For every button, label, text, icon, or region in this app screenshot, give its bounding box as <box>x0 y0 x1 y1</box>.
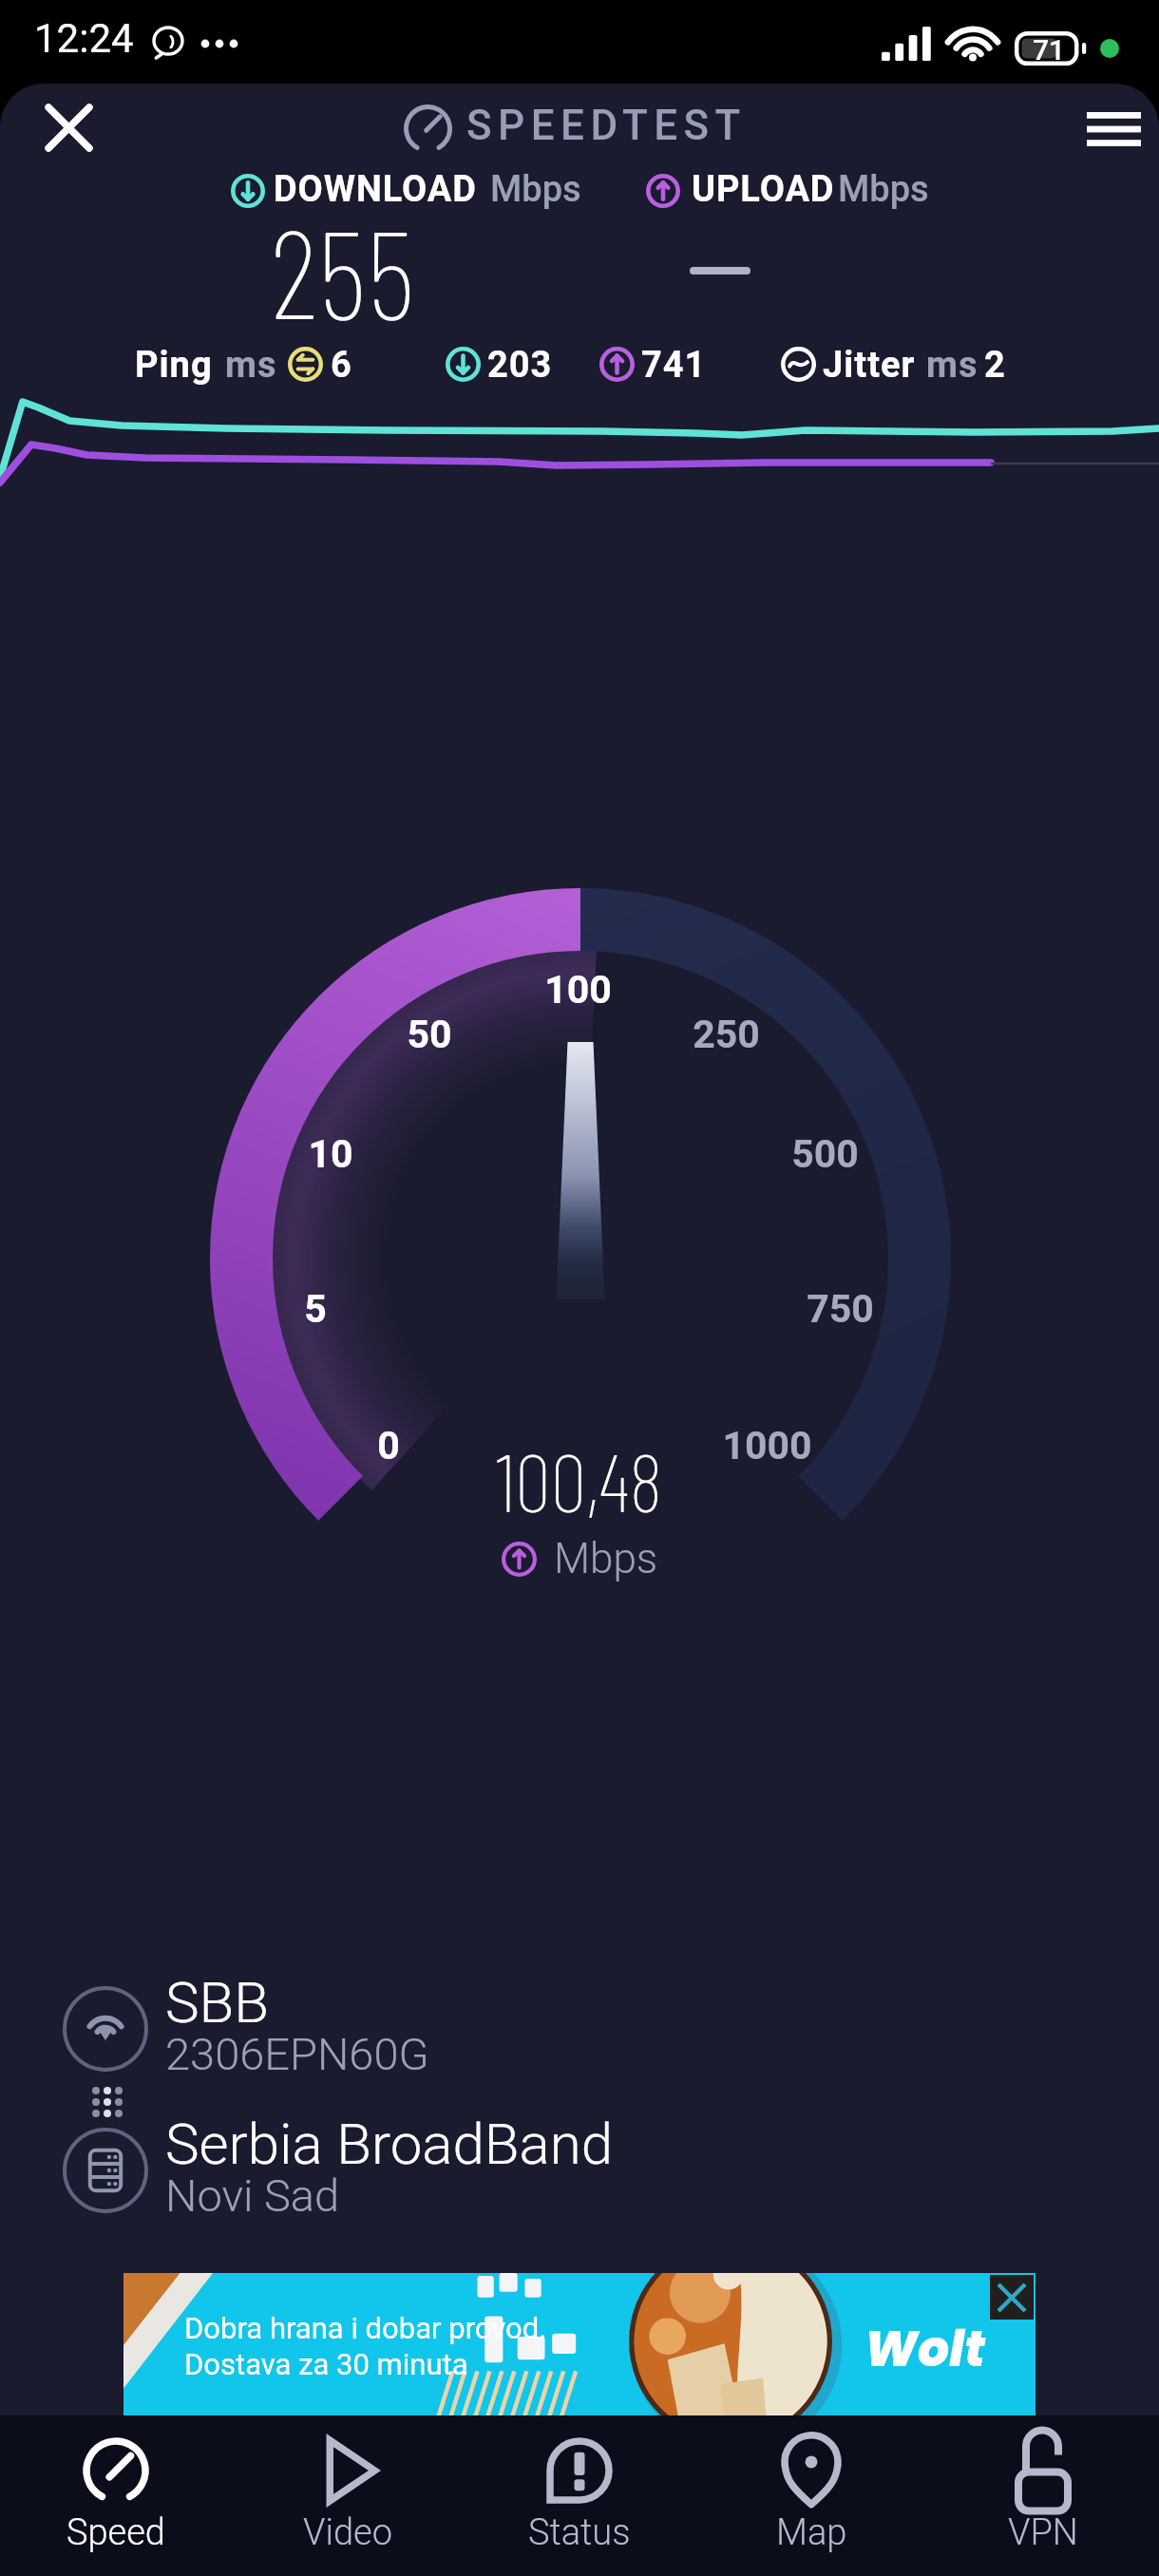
staticText: Ping <box>135 344 213 387</box>
staticText: 203 <box>487 344 553 387</box>
staticText: Dostava za 30 minuta <box>184 2347 468 2381</box>
staticText: Video <box>303 2511 393 2554</box>
staticText: Mbps <box>554 1534 658 1583</box>
staticText: Wolt <box>864 2314 985 2383</box>
button[interactable]: Map <box>695 2415 927 2576</box>
button[interactable]: Video <box>232 2415 464 2576</box>
staticText: DOWNLOAD <box>274 168 477 211</box>
button[interactable]: SBB <box>49 1980 999 2080</box>
staticText: Jitter <box>823 344 916 387</box>
staticText: Serbia BroadBand <box>165 2111 614 2177</box>
staticText: Dobra hrana i dobar provod. <box>184 2311 547 2345</box>
staticText: 2306EPN60G <box>165 2028 429 2080</box>
staticText: Novi Sad <box>165 2169 340 2222</box>
staticText: 255 <box>270 195 415 344</box>
staticText: 10 <box>308 1131 353 1177</box>
staticText: SBB <box>165 1969 270 2036</box>
staticText: VPN <box>1008 2511 1078 2554</box>
button[interactable]: Menu <box>1068 84 1159 175</box>
staticText: 0 <box>377 1423 400 1468</box>
button[interactable]: Speed <box>0 2415 232 2576</box>
staticText: 5 <box>304 1286 327 1332</box>
button[interactable]: Status <box>464 2415 695 2576</box>
staticText: 741 <box>641 344 707 387</box>
staticText: Mbps <box>490 168 581 211</box>
staticText: 2 <box>984 344 1006 387</box>
button[interactable]: Serbia BroadBand <box>49 2122 999 2222</box>
staticText: Map <box>776 2511 847 2554</box>
staticText: 750 <box>807 1286 874 1332</box>
staticText: 71 <box>1033 33 1066 66</box>
staticText: 500 <box>791 1131 859 1177</box>
staticText: 100,48 <box>496 1431 663 1528</box>
staticText: 100 <box>544 967 612 1013</box>
staticText: SPEEDTEST <box>466 101 747 150</box>
staticText: 250 <box>693 1012 760 1057</box>
staticText: ms <box>926 344 978 387</box>
staticText: Mbps <box>838 168 929 211</box>
staticText: 50 <box>407 1012 452 1057</box>
button[interactable]: VPN <box>927 2415 1159 2576</box>
staticText: 6 <box>331 344 352 387</box>
button[interactable]: Dobra hrana i dobar provod. <box>123 2273 1035 2415</box>
staticText: 12:24 <box>34 15 134 62</box>
staticText: ms <box>225 344 277 387</box>
button[interactable]: Close <box>19 84 119 178</box>
staticText: Speed <box>66 2511 165 2554</box>
staticText: 1000 <box>722 1423 812 1468</box>
staticText: UPLOAD <box>692 168 835 211</box>
button[interactable]: Close ad <box>990 2275 1034 2320</box>
staticText: Status <box>528 2511 631 2554</box>
